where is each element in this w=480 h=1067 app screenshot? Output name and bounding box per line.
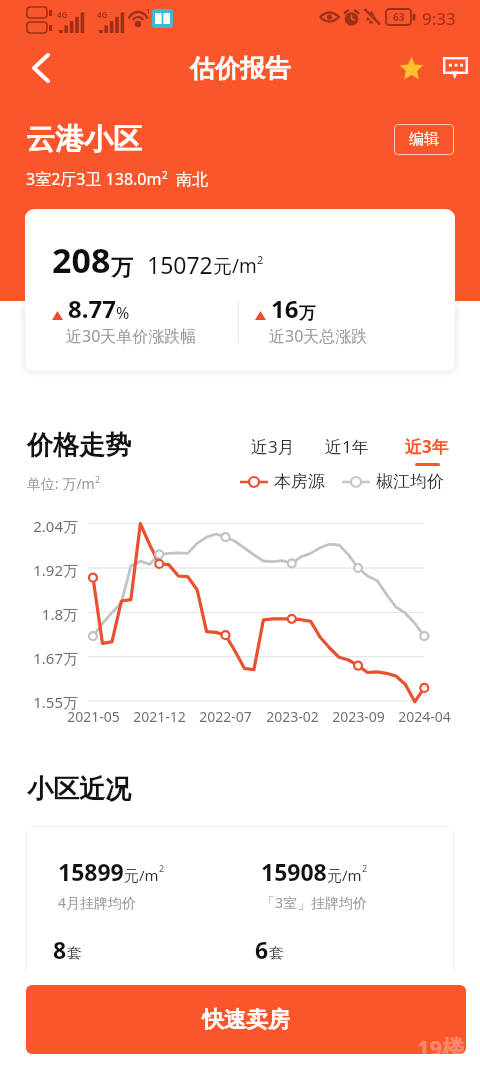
staticText: 4G <box>57 9 68 20</box>
staticText: 近3月 <box>251 435 295 458</box>
staticText: 2 <box>95 473 101 485</box>
button[interactable]: 近3月 <box>245 428 301 465</box>
staticText: 「3室」挂牌均价 <box>261 893 368 912</box>
staticText: 6 <box>255 934 269 965</box>
staticText: 1.92万 <box>33 560 78 580</box>
staticText: 15072 <box>147 249 213 280</box>
button[interactable]: 快速卖房 <box>26 985 466 1054</box>
staticText: 63 <box>393 10 405 24</box>
staticText: 在售房源套数 <box>53 971 137 989</box>
staticText: 2 <box>162 168 168 182</box>
staticText: 2 <box>257 252 264 267</box>
staticText: 19楼 <box>417 1032 465 1062</box>
staticText: 8.77 <box>68 292 116 325</box>
staticText: 2021-12 <box>133 707 186 726</box>
staticText: 19lou.com <box>415 1052 462 1064</box>
button[interactable]: Favorite <box>389 45 434 90</box>
staticText: 快速卖房 <box>202 1006 290 1034</box>
staticText: 元/m <box>124 865 159 885</box>
staticText: 估价报告 <box>190 53 290 84</box>
staticText: 16 <box>271 292 299 325</box>
staticText: 2 <box>362 862 368 874</box>
staticText: 2 <box>159 862 165 874</box>
staticText: 近3年 <box>405 435 449 458</box>
staticText: 15899 <box>58 856 124 887</box>
staticText: 208 <box>52 237 111 283</box>
staticText: 套 <box>67 944 82 963</box>
staticText: 价格走势 <box>27 429 131 462</box>
staticText: 云港小区 <box>26 121 142 158</box>
staticText: 南北 <box>168 168 209 190</box>
staticText: 近1年 <box>325 435 369 458</box>
staticText: 1.8万 <box>41 604 78 624</box>
staticText: 成交房源套数 <box>255 971 339 989</box>
staticText: 万 <box>111 254 133 282</box>
staticText: 2023-02 <box>266 707 319 726</box>
button[interactable]: 近1年 <box>319 428 375 465</box>
staticText: 本房源 <box>274 471 325 492</box>
staticText: 2021-05 <box>67 707 120 726</box>
staticText: 1.67万 <box>33 648 78 668</box>
button[interactable]: 近3年 <box>399 428 455 473</box>
staticText: % <box>116 302 130 324</box>
staticText: 3室2厅3卫 138.0m <box>26 168 162 190</box>
staticText: 9:33 <box>422 7 456 30</box>
staticText: 4G <box>97 9 108 20</box>
staticText: 套 <box>269 944 284 963</box>
staticText: 小区近况 <box>27 773 131 806</box>
staticText: 1 <box>146 7 151 17</box>
button[interactable]: Comments <box>433 45 478 90</box>
staticText: 万 <box>299 303 316 324</box>
staticText: 2023-09 <box>332 707 385 726</box>
staticText: 2024-04 <box>398 707 451 726</box>
staticText: 椒江均价 <box>376 471 444 492</box>
staticText: 元/m <box>327 865 362 885</box>
staticText: 15908 <box>261 856 327 887</box>
staticText: 近30天单价涨跌幅 <box>66 325 197 347</box>
staticText: 单位: 万/m <box>27 474 95 493</box>
staticText: 编辑 <box>409 130 439 149</box>
staticText: 2.04万 <box>33 516 78 536</box>
staticText: 近30天总涨跌 <box>269 325 368 347</box>
button[interactable]: 编辑 <box>394 124 454 155</box>
staticText: 1.55万 <box>33 692 78 712</box>
staticText: 元/m <box>213 253 257 279</box>
staticText: 4月挂牌均价 <box>58 893 137 912</box>
button[interactable]: Back <box>14 42 66 94</box>
staticText: 8 <box>53 934 67 965</box>
staticText: 2022-07 <box>199 707 252 726</box>
